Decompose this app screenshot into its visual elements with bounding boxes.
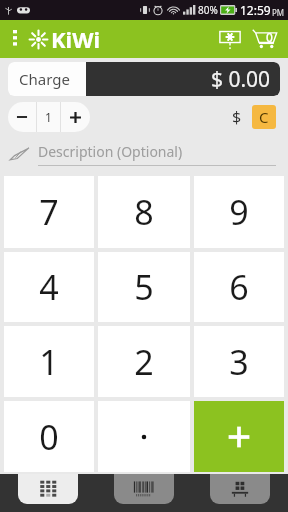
staticText: 3	[229, 339, 249, 385]
staticText: 80%	[198, 3, 218, 17]
staticText: 2	[134, 339, 154, 385]
button[interactable]: Currency	[226, 104, 248, 130]
staticText: Description (Optional)	[38, 142, 183, 161]
staticText: 0	[266, 29, 273, 45]
button[interactable]	[98, 401, 190, 472]
staticText: KiWi	[51, 24, 101, 54]
button[interactable]: 7	[4, 176, 94, 248]
staticText: 12:59	[240, 2, 271, 18]
staticText: 0	[39, 414, 59, 460]
staticText: PM	[272, 7, 285, 18]
button[interactable]: Add	[194, 401, 284, 472]
button[interactable]: Products	[210, 474, 270, 504]
staticText: 6	[229, 264, 249, 310]
staticText: 1	[45, 109, 52, 125]
button[interactable]: C	[252, 105, 276, 129]
staticText: 1	[39, 339, 59, 385]
button[interactable]: Description (Optional)	[8, 140, 276, 168]
button[interactable]: 6	[194, 252, 284, 322]
button[interactable]: 1	[4, 326, 94, 397]
staticText: 4	[39, 264, 59, 310]
button[interactable]: Menu	[7, 24, 23, 54]
button[interactable]: Discount	[215, 24, 245, 54]
staticText: 8	[134, 189, 154, 235]
button[interactable]: 4	[4, 252, 94, 322]
button[interactable]: 2	[98, 326, 190, 397]
button[interactable]: 8	[98, 176, 190, 248]
button[interactable]: 3	[194, 326, 284, 397]
button[interactable]: 0	[4, 401, 94, 472]
staticText: $	[232, 106, 242, 128]
button[interactable]: Scan barcode	[114, 474, 174, 504]
staticText: C	[259, 107, 269, 127]
button[interactable]: Increase quantity	[61, 102, 90, 132]
staticText: 7	[39, 189, 59, 235]
button[interactable]: Cart	[249, 24, 281, 54]
button[interactable]: 5	[98, 252, 190, 322]
staticText: 5	[134, 264, 154, 310]
staticText: 9	[229, 189, 249, 235]
staticText: Charge	[19, 69, 70, 89]
button[interactable]: Charge	[8, 62, 280, 96]
button[interactable]: Keypad	[18, 474, 78, 504]
staticText: $ 0.00	[211, 65, 271, 94]
button[interactable]: Decrease quantity	[8, 102, 36, 132]
button[interactable]: 9	[194, 176, 284, 248]
